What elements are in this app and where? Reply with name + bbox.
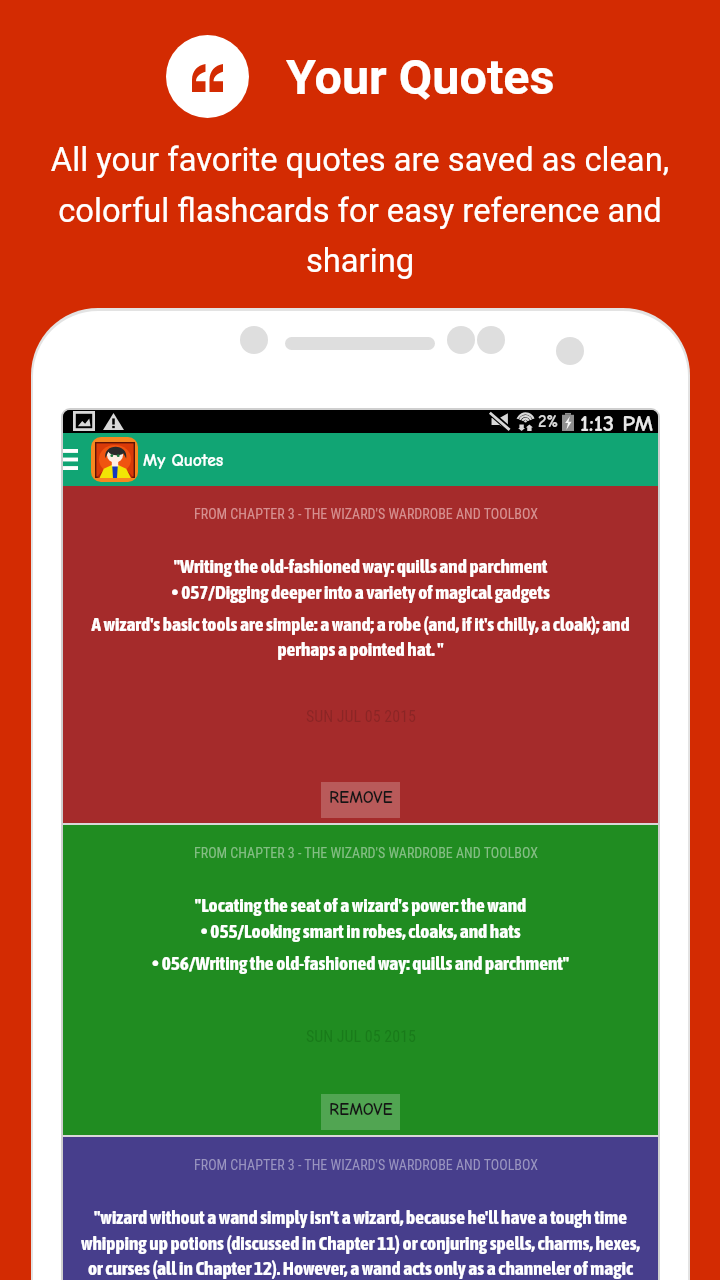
staticText: "wizard without a wand simply isn't a wi…	[72, 1206, 649, 1279]
staticText: FROM CHAPTER 3 - THE WIZARD'S WARDROBE A…	[194, 506, 538, 522]
staticText: 2%	[538, 412, 559, 432]
staticText: FROM CHAPTER 3 - THE WIZARD'S WARDROBE A…	[194, 845, 538, 861]
staticText: SUN JUL 05 2015	[306, 1027, 416, 1046]
staticText: 1:13 PM	[580, 410, 654, 433]
button[interactable]: REMOVE	[321, 1094, 400, 1130]
button[interactable]: REMOVE	[321, 782, 400, 818]
button[interactable]: App icon	[91, 437, 138, 482]
staticText: Your Quotes	[286, 49, 555, 106]
staticText: My Quotes	[143, 450, 224, 470]
staticText: "Locating the seat of a wizard's power: …	[72, 894, 649, 979]
staticText: SUN JUL 05 2015	[306, 707, 416, 726]
staticText: FROM CHAPTER 3 - THE WIZARD'S WARDROBE A…	[194, 1157, 538, 1173]
staticText: "Writing the old-fashioned way: quills a…	[72, 555, 649, 660]
button[interactable]: Open navigation drawer	[63, 433, 92, 486]
staticText: All your favorite quotes are saved as cl…	[24, 141, 696, 280]
staticText: REMOVE	[329, 1100, 393, 1120]
staticText: REMOVE	[329, 788, 393, 808]
